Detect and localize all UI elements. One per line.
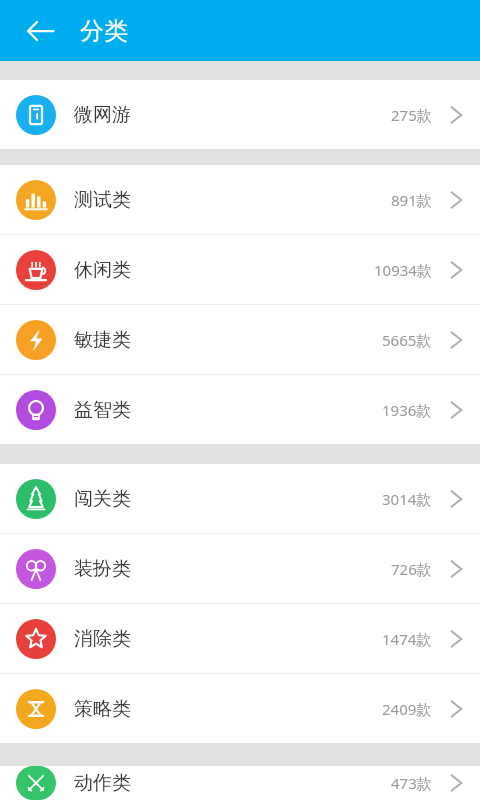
staticText: 测试类 [74,188,131,212]
staticText: 消除类 [74,627,131,651]
button[interactable]: 动作类 [0,766,480,800]
button[interactable]: 消除类 [0,604,480,673]
staticText: 敏捷类 [74,328,131,352]
staticText: 3014款 [382,489,432,509]
button[interactable]: 微网游 [0,80,480,149]
staticText: 装扮类 [74,557,131,581]
button[interactable]: 测试类 [0,165,480,234]
button[interactable]: 策略类 [0,674,480,743]
staticText: 动作类 [74,771,131,795]
staticText: 休闲类 [74,258,131,282]
button[interactable]: 装扮类 [0,534,480,603]
button[interactable]: 敏捷类 [0,305,480,374]
staticText: 微网游 [74,103,131,127]
staticText: 1474款 [382,629,432,649]
staticText: 分类 [80,16,128,46]
staticText: 473款 [391,773,432,793]
staticText: 10934款 [374,260,432,280]
staticText: 益智类 [74,398,131,422]
button[interactable]: 休闲类 [0,235,480,304]
button[interactable]: 闯关类 [0,464,480,533]
staticText: 2409款 [382,699,432,719]
staticText: 5665款 [382,330,432,350]
staticText: 891款 [391,190,432,210]
staticText: 闯关类 [74,487,131,511]
staticText: 策略类 [74,697,131,721]
button[interactable]: 益智类 [0,375,480,444]
button[interactable]: Back [12,3,68,59]
staticText: 1936款 [382,400,432,420]
staticText: 275款 [391,105,432,125]
staticText: 726款 [391,559,432,579]
